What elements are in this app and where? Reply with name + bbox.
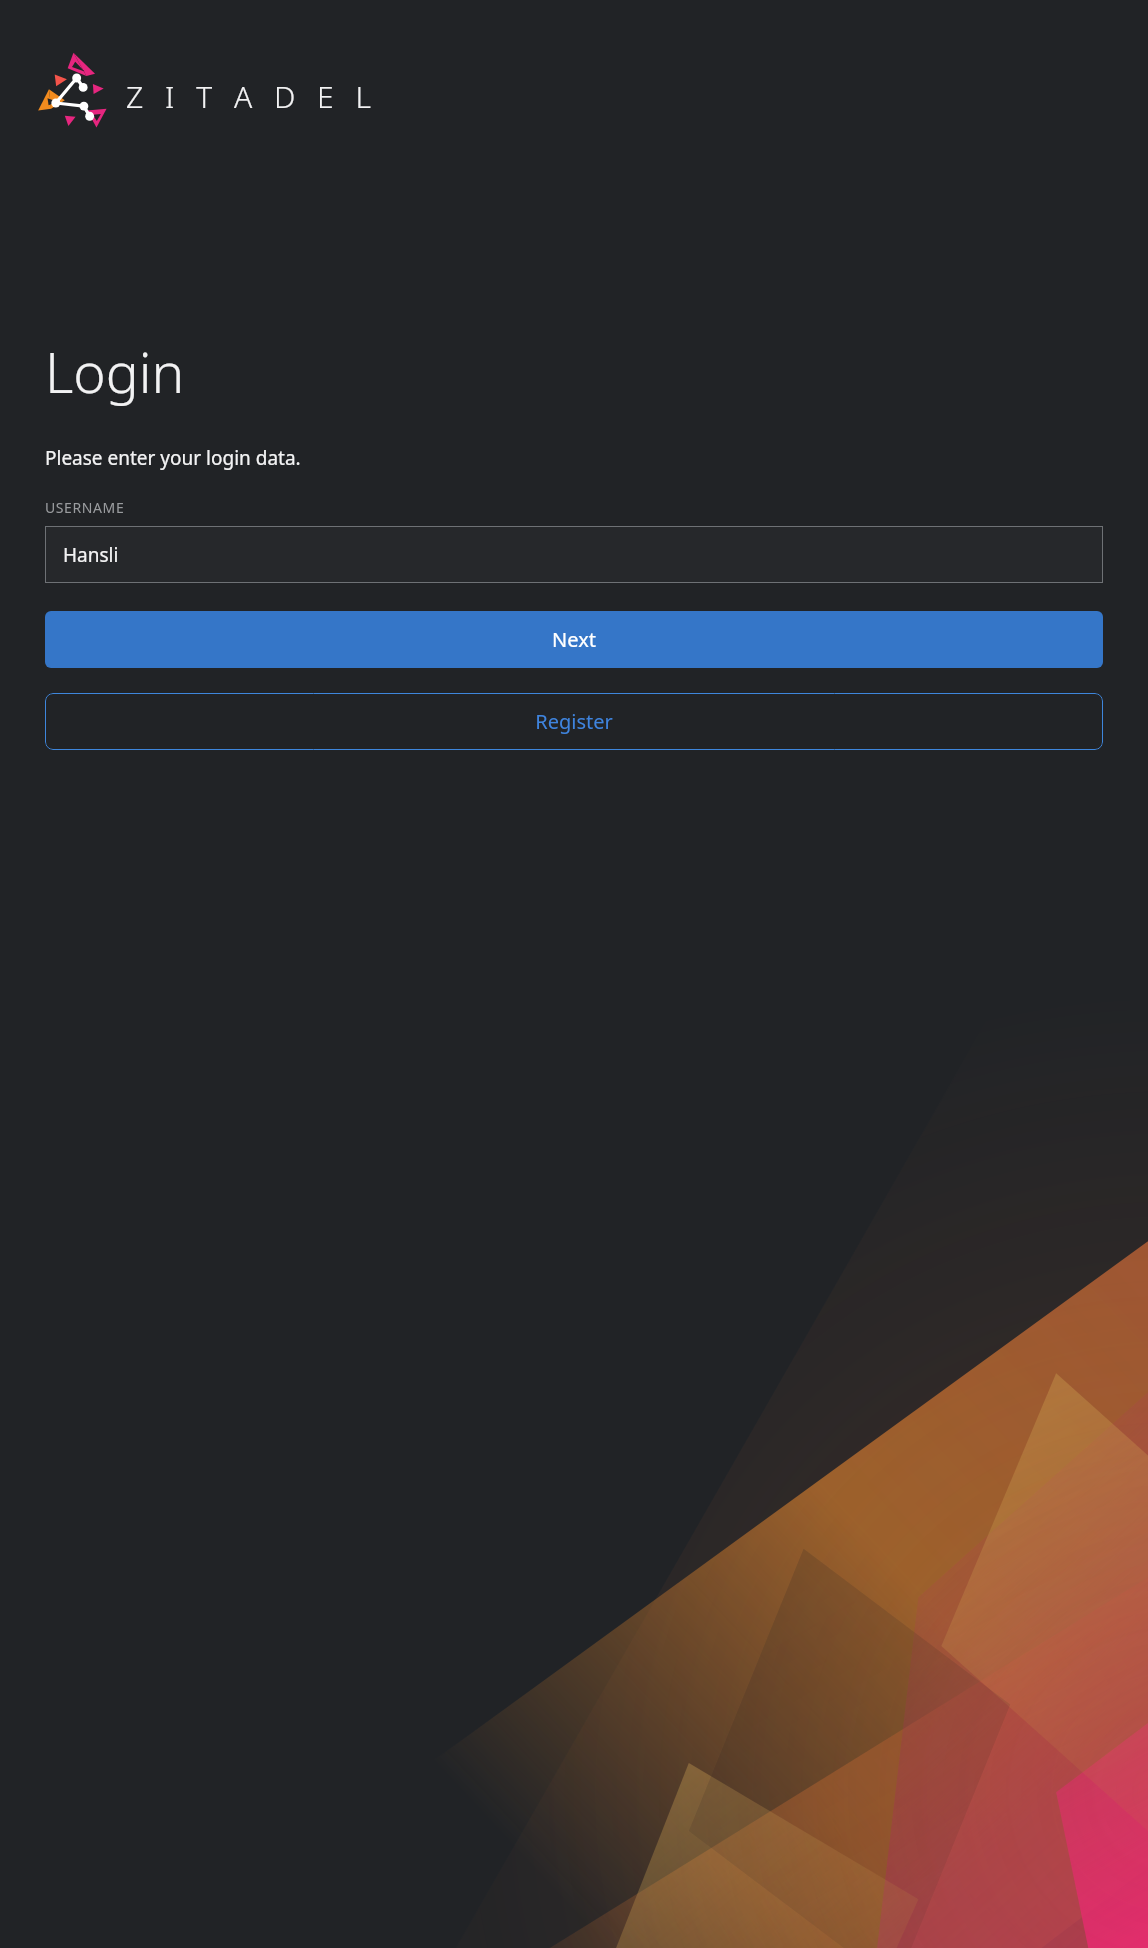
staticText: USERNAME: [45, 498, 125, 517]
button[interactable]: Next: [45, 611, 1103, 668]
staticText: Register: [535, 708, 613, 735]
staticText: Please enter your login data.: [45, 445, 301, 471]
staticText: Hansli: [63, 542, 119, 568]
staticText: Next: [552, 626, 596, 653]
button[interactable]: Register: [45, 693, 1103, 750]
staticText: Z I T A D E L: [126, 76, 378, 117]
staticText: Login: [45, 334, 185, 409]
other: Zitadel logo: [36, 48, 108, 126]
button[interactable]: Hansli: [45, 526, 1103, 583]
